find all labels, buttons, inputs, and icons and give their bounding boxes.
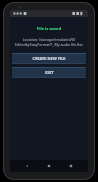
staticText: File is saved: [37, 26, 61, 31]
button[interactable]: EXIT: [12, 67, 86, 78]
button[interactable]: Back: [22, 161, 32, 171]
button[interactable]: Recents: [66, 161, 76, 171]
staticText: Location: /storage/emulated/0/ EditedbyE…: [13, 37, 85, 47]
button[interactable]: Home: [44, 161, 54, 171]
staticText: EXIT: [45, 70, 54, 75]
button[interactable]: CREATE NEW FILE: [12, 53, 86, 64]
staticText: CREATE NEW FILE: [32, 56, 66, 61]
